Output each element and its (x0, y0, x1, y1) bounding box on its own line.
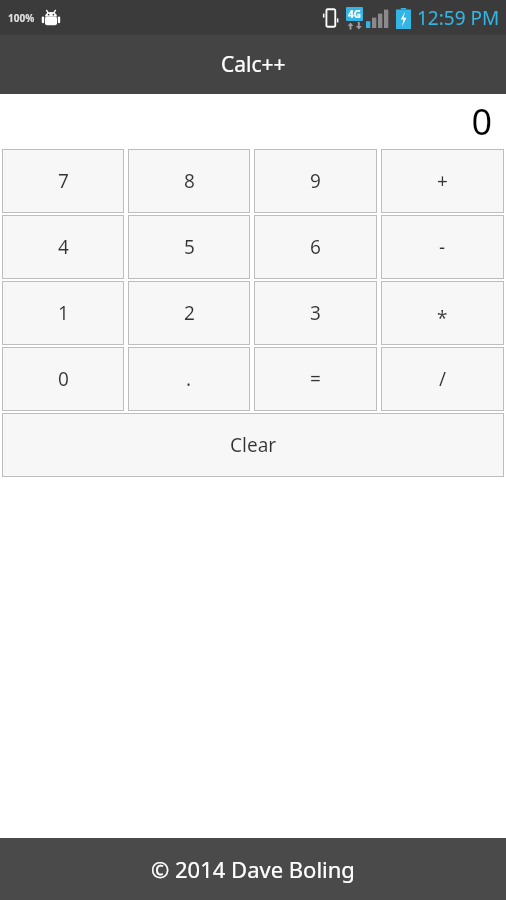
button[interactable]: 5 (128, 215, 250, 279)
button[interactable]: * (381, 281, 504, 345)
button[interactable]: = (254, 347, 377, 411)
button[interactable]: 6 (254, 215, 377, 279)
button[interactable]: 2 (128, 281, 250, 345)
staticText: = (310, 366, 321, 392)
button[interactable]: 4 (2, 215, 124, 279)
staticText: © 2014 Dave Boling (151, 854, 355, 884)
button[interactable]: 8 (128, 149, 250, 213)
button[interactable]: 3 (254, 281, 377, 345)
staticText: 100% (8, 11, 35, 25)
staticText: 2 (184, 300, 195, 326)
button[interactable]: 1 (2, 281, 124, 345)
staticText: - (439, 234, 446, 260)
staticText: 3 (310, 300, 321, 326)
staticText: + (437, 168, 448, 194)
button[interactable]: 0 (2, 347, 124, 411)
button[interactable]: 9 (254, 149, 377, 213)
button[interactable]: + (381, 149, 504, 213)
staticText: 4G (348, 7, 361, 21)
button[interactable]: 7 (2, 149, 124, 213)
staticText: 9 (310, 168, 321, 194)
staticText: . (186, 366, 192, 392)
staticText: Clear (230, 432, 277, 458)
button[interactable]: - (381, 215, 504, 279)
staticText: 8 (184, 168, 195, 194)
staticText: 6 (310, 234, 321, 260)
button[interactable]: / (381, 347, 504, 411)
staticText: 1 (58, 300, 69, 326)
staticText: 5 (184, 234, 195, 260)
staticText: 0 (58, 366, 69, 392)
button[interactable]: Clear (2, 413, 504, 477)
button[interactable]: . (128, 347, 250, 411)
staticText: 0 (471, 97, 492, 146)
staticText: * (437, 305, 448, 331)
staticText: Calc++ (221, 50, 286, 79)
staticText: 12:59 PM (417, 5, 500, 31)
staticText: 4 (58, 234, 69, 260)
staticText: / (439, 366, 447, 392)
staticText: 7 (58, 168, 69, 194)
